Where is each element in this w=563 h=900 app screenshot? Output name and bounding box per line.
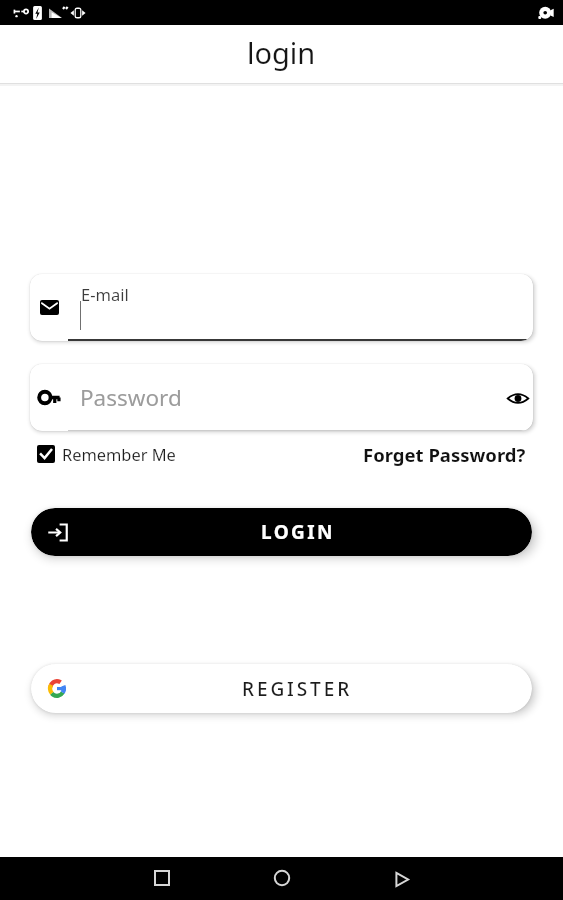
staticText: Password bbox=[80, 382, 499, 413]
staticText: REGISTER bbox=[242, 676, 353, 702]
staticText: Forget Password? bbox=[363, 442, 526, 467]
button[interactable]: Show password bbox=[503, 383, 533, 413]
button[interactable]: LOGIN bbox=[31, 508, 532, 556]
button[interactable]: Back bbox=[381, 859, 421, 899]
button[interactable]: Home bbox=[262, 858, 302, 898]
button[interactable]: Password bbox=[30, 364, 533, 431]
staticText: login bbox=[247, 33, 316, 72]
button[interactable]: Recent apps bbox=[142, 858, 182, 898]
button[interactable]: Forget Password? bbox=[363, 442, 526, 467]
staticText: E-mail bbox=[81, 283, 129, 305]
button[interactable]: E-mail bbox=[30, 274, 533, 341]
staticText: LOGIN bbox=[261, 519, 335, 545]
button[interactable]: Remember Me bbox=[37, 443, 176, 465]
staticText: Remember Me bbox=[62, 443, 176, 465]
button[interactable]: REGISTER bbox=[31, 664, 532, 713]
